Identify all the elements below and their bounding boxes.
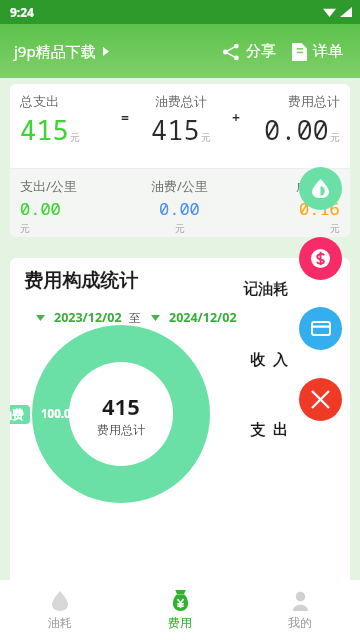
staticText: 至 — [129, 310, 141, 325]
staticText: + — [232, 108, 241, 127]
button[interactable]: 记油耗 — [299, 167, 342, 210]
staticText: 详单 — [313, 42, 343, 61]
staticText: 油费 — [10, 407, 24, 422]
staticText: 0.00 — [159, 197, 200, 220]
staticText: 油耗 — [48, 615, 72, 630]
button[interactable]: 2024/12/02 — [151, 306, 237, 329]
staticText: 元 — [20, 222, 30, 235]
staticText: 元 — [330, 222, 340, 235]
button[interactable]: 2023/12/02 — [36, 306, 122, 329]
button[interactable]: 分享 — [217, 34, 281, 69]
staticText: 费用总计 — [288, 93, 340, 109]
staticText: 元 — [70, 131, 80, 144]
staticText: 0.00 — [20, 197, 61, 220]
staticText: 415 — [102, 391, 140, 421]
staticText: 费用构成统计 — [24, 269, 138, 293]
staticText: 油费/公里 — [151, 177, 208, 195]
staticText: 100.0% — [41, 406, 81, 422]
staticText: 2023/12/02 — [54, 309, 122, 326]
button[interactable]: 收入 — [299, 237, 342, 280]
staticText: 2024/12/02 — [169, 309, 237, 326]
staticText: 支 出 — [250, 419, 288, 439]
staticText: 成本/天 — [296, 177, 340, 195]
button[interactable]: 油耗 — [0, 580, 120, 640]
staticText: 0.16 — [299, 197, 340, 220]
staticText: 415 — [20, 111, 69, 148]
staticText: 我的 — [288, 615, 312, 630]
button[interactable]: 总支出 — [10, 84, 350, 237]
staticText: = — [121, 108, 130, 127]
staticText: 支出/公里 — [20, 177, 77, 195]
button[interactable]: 我的 — [240, 580, 360, 640]
staticText: 415 — [151, 111, 200, 148]
button[interactable]: 支出 — [299, 307, 342, 350]
staticText: 费用 — [168, 615, 192, 630]
staticText: 9:24 — [10, 4, 34, 20]
button[interactable]: 费用 — [120, 580, 240, 640]
staticText: 记油耗 — [243, 280, 288, 299]
staticText: 费用总计 — [97, 422, 145, 437]
staticText: 元 — [330, 131, 340, 144]
staticText: j9p精品下载 — [14, 41, 96, 61]
staticText: 总支出 — [20, 93, 59, 109]
staticText: 收 入 — [250, 349, 288, 369]
staticText: 0.00 — [264, 111, 329, 148]
staticText: 油费总计 — [155, 93, 207, 109]
button[interactable]: j9p精品下载 — [12, 33, 111, 69]
button[interactable]: 关闭 — [299, 378, 342, 421]
button[interactable]: 详单 — [287, 34, 348, 69]
staticText: 元 — [201, 131, 211, 144]
staticText: 元 — [175, 222, 185, 235]
staticText: 分享 — [246, 42, 276, 61]
